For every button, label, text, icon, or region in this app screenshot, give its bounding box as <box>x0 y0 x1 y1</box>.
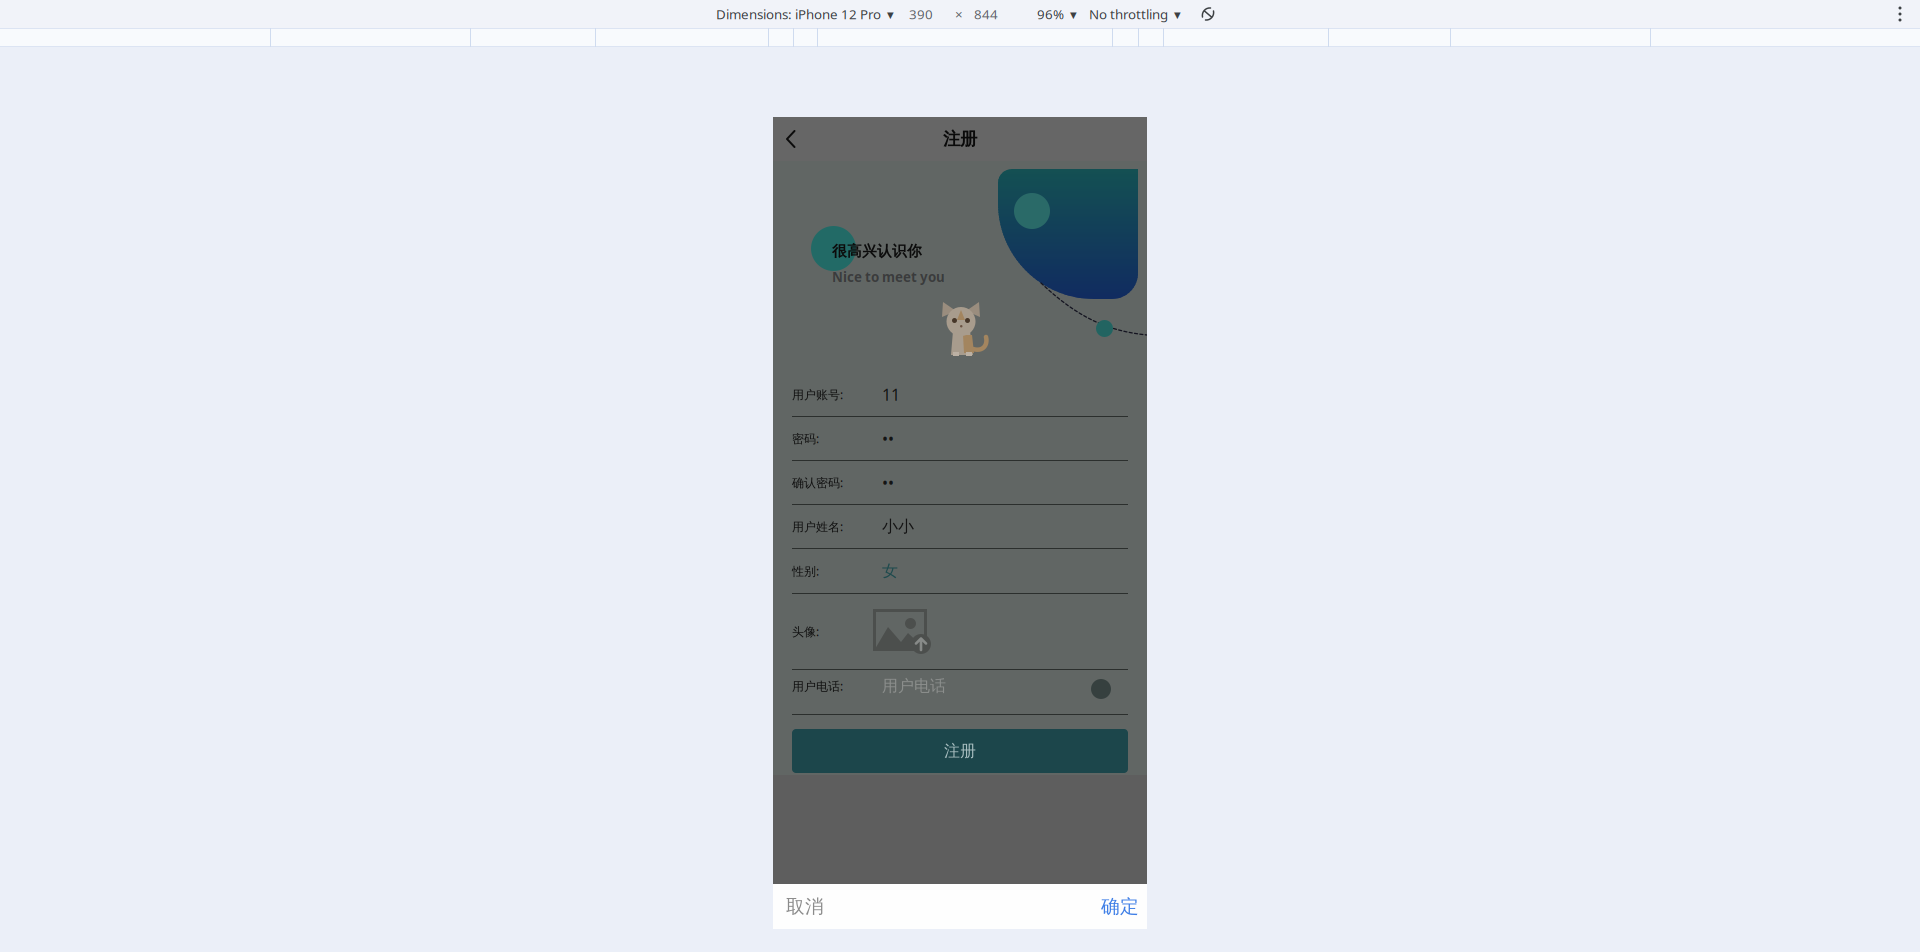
staticText: 注册 <box>944 741 976 761</box>
staticText: 96% ▾ <box>1037 5 1077 23</box>
staticText: 确认密码: <box>792 474 843 490</box>
button[interactable]: 确认密码: <box>792 461 1128 505</box>
staticText: 女 <box>882 561 898 581</box>
staticText: 390 <box>909 5 933 23</box>
staticText: 844 <box>974 5 998 23</box>
button[interactable]: More options <box>1890 0 1910 28</box>
button[interactable]: 用户电话: <box>792 670 1128 715</box>
button[interactable]: 确定 <box>1096 886 1144 927</box>
staticText: 确定 <box>1101 895 1139 918</box>
staticText: 用户电话: <box>792 678 843 694</box>
button[interactable]: Back <box>773 117 809 161</box>
button[interactable]: 用户账号: <box>792 373 1128 417</box>
staticText: 头像: <box>792 623 819 639</box>
staticText: 11 <box>882 384 900 405</box>
staticText: No throttling ▾ <box>1089 5 1181 23</box>
button[interactable]: Dimensions: iPhone 12 Pro ▾ <box>716 0 894 28</box>
button[interactable]: No throttling ▾ <box>1089 0 1181 28</box>
button[interactable]: 用户姓名: <box>792 505 1128 549</box>
button[interactable]: 取消 <box>781 886 829 927</box>
staticText: 密码: <box>792 430 819 446</box>
staticText: •• <box>882 472 894 493</box>
button[interactable]: 注册 <box>792 729 1128 773</box>
button[interactable]: 96% ▾ <box>1037 0 1077 28</box>
button[interactable]: Choose avatar <box>792 594 1128 670</box>
staticText: 用户账号: <box>792 386 843 402</box>
staticText: Dimensions: iPhone 12 Pro ▾ <box>716 5 894 23</box>
staticText: 性别: <box>792 563 819 579</box>
staticText: 取消 <box>786 895 824 918</box>
staticText: 用户电话 <box>882 676 946 696</box>
staticText: 注册 <box>943 128 977 150</box>
staticText: •• <box>882 428 894 449</box>
button[interactable]: 性别: <box>792 549 1128 594</box>
button[interactable]: 密码: <box>792 417 1128 461</box>
button[interactable]: Link device pixel ratio <box>1197 0 1219 28</box>
staticText: × <box>955 5 963 23</box>
staticText: 用户姓名: <box>792 518 843 534</box>
staticText: 小小 <box>882 517 914 536</box>
staticText: Nice to meet you <box>832 268 945 286</box>
staticText: 很高兴认识你 <box>832 242 922 260</box>
